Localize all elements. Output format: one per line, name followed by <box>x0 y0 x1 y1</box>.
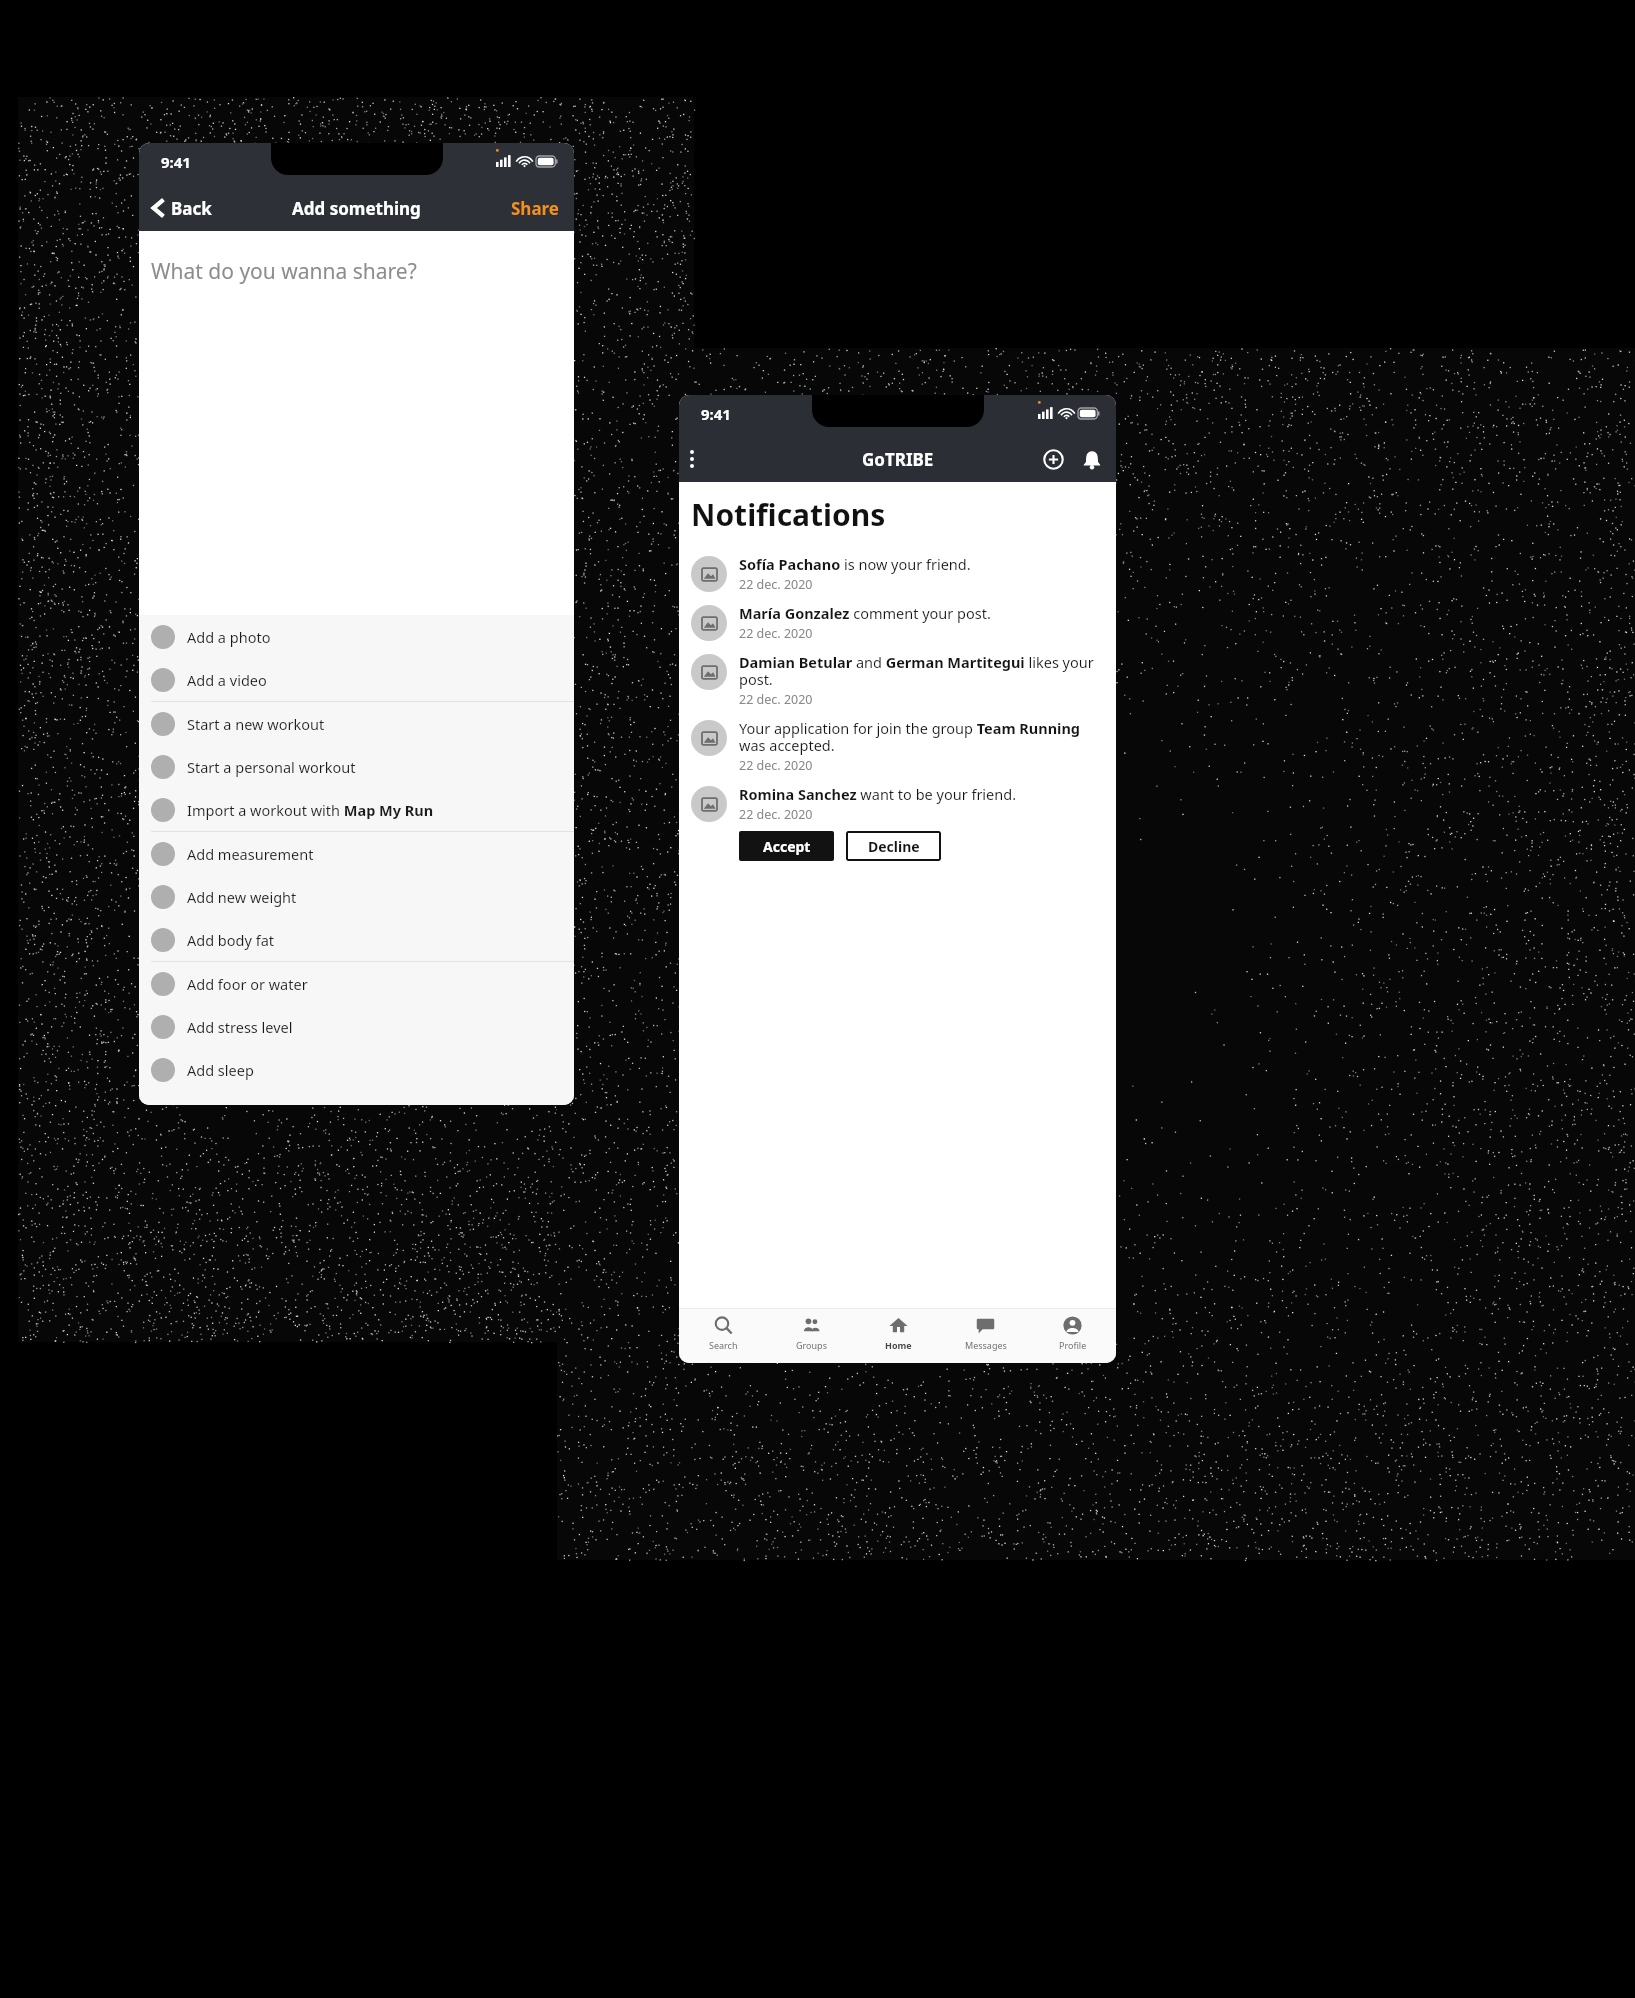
staticText: Share <box>511 197 560 220</box>
button[interactable]: Search <box>679 1309 767 1363</box>
staticText: 22 dec. 2020 <box>739 757 813 774</box>
staticText: Decline <box>868 837 920 856</box>
button[interactable]: Add body fat <box>139 918 574 961</box>
staticText: Add sleep <box>187 1060 254 1080</box>
button[interactable]: Add new weight <box>139 875 574 918</box>
staticText: Add measurement <box>187 844 314 864</box>
staticText: 22 dec. 2020 <box>739 806 813 823</box>
staticText: Add body fat <box>187 930 274 950</box>
staticText: Home <box>885 1339 912 1351</box>
staticText: 9:41 <box>161 152 191 172</box>
staticText: What do you wanna share? <box>151 257 417 286</box>
staticText: Add a photo <box>187 627 271 647</box>
button[interactable]: Add a video <box>139 658 574 701</box>
button[interactable]: Romina Sanchez want to be your friend. <box>679 779 1116 870</box>
staticText: GoTRIBE <box>862 448 934 471</box>
staticText: Damian Betular and German Martitegui lik… <box>739 652 1102 689</box>
button[interactable]: Add a photo <box>139 615 574 658</box>
staticText: Your application for join the group Team… <box>739 718 1102 755</box>
button[interactable]: Add measurement <box>139 832 574 875</box>
staticText: Messages <box>965 1339 1007 1351</box>
button[interactable]: Start a new workout <box>139 702 574 745</box>
button[interactable]: More options <box>679 442 705 476</box>
button[interactable]: Sofía Pachano is now your friend. <box>679 549 1116 598</box>
button[interactable]: Add stress level <box>139 1005 574 1048</box>
staticText: Add new weight <box>187 887 297 907</box>
button[interactable]: Messages <box>942 1309 1029 1363</box>
button[interactable]: Your application for join the group Team… <box>679 713 1116 779</box>
staticText: Add a video <box>187 670 267 690</box>
button[interactable]: Share <box>497 189 574 228</box>
staticText: 9:41 <box>701 404 731 424</box>
staticText: Start a new workout <box>187 714 325 734</box>
button[interactable]: Back <box>139 188 220 228</box>
button[interactable]: Accept <box>739 831 834 861</box>
staticText: Romina Sanchez want to be your friend. <box>739 784 1017 804</box>
staticText: Groups <box>796 1339 827 1351</box>
button[interactable]: Import a workout with Map My Run <box>139 788 574 831</box>
button[interactable]: Notifications <box>1076 444 1108 476</box>
button[interactable]: What do you wanna share? <box>139 231 574 615</box>
button[interactable]: Damian Betular and German Martitegui lik… <box>679 647 1116 713</box>
staticText: 22 dec. 2020 <box>739 576 813 593</box>
staticText: Import a workout with Map My Run <box>187 800 434 820</box>
staticText: 22 dec. 2020 <box>739 625 813 642</box>
staticText: Notifications <box>691 494 886 535</box>
staticText: Accept <box>763 837 811 856</box>
staticText: María Gonzalez comment your post. <box>739 603 991 623</box>
button[interactable]: Add sleep <box>139 1048 574 1091</box>
staticText: Back <box>171 197 212 220</box>
button[interactable]: Start a personal workout <box>139 745 574 788</box>
staticText: Add something <box>292 197 421 220</box>
staticText: 22 dec. 2020 <box>739 691 813 708</box>
staticText: Profile <box>1059 1339 1087 1351</box>
staticText: Search <box>709 1339 738 1351</box>
button[interactable]: Profile <box>1029 1309 1116 1363</box>
staticText: Add foor or water <box>187 974 308 994</box>
button[interactable]: Decline <box>846 831 941 861</box>
button[interactable]: Add foor or water <box>139 962 574 1005</box>
staticText: Sofía Pachano is now your friend. <box>739 554 971 574</box>
button[interactable]: María Gonzalez comment your post. <box>679 598 1116 647</box>
button[interactable]: Add <box>1037 443 1070 476</box>
button[interactable]: Home <box>855 1309 942 1363</box>
staticText: Add stress level <box>187 1017 293 1037</box>
staticText: Start a personal workout <box>187 757 356 777</box>
button[interactable]: Groups <box>767 1309 855 1363</box>
